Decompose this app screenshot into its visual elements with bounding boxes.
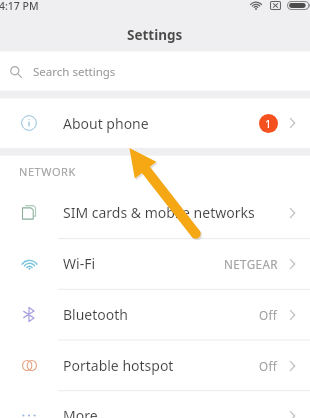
staticText: 1 bbox=[265, 116, 272, 131]
button[interactable]: More bbox=[0, 390, 310, 418]
button[interactable]: Wi-Fi bbox=[0, 238, 310, 289]
button[interactable]: Bluetooth bbox=[0, 289, 310, 340]
staticText: Settings bbox=[127, 26, 183, 44]
staticText: Off bbox=[259, 307, 278, 323]
other: Pointer bbox=[0, 0, 310, 418]
staticText: NETGEAR bbox=[224, 256, 278, 272]
button[interactable]: About phone bbox=[0, 98, 310, 148]
staticText: Portable hotspot bbox=[63, 356, 174, 375]
staticText: About phone bbox=[63, 114, 149, 133]
button[interactable]: SIM cards & mobile networks bbox=[0, 187, 310, 238]
staticText: Wi-Fi bbox=[63, 254, 96, 273]
staticText: More bbox=[63, 406, 98, 418]
staticText: NETWORK bbox=[19, 164, 76, 179]
staticText: Search settings bbox=[33, 64, 116, 80]
staticText: SIM cards & mobile networks bbox=[63, 203, 255, 222]
staticText: Off bbox=[259, 358, 278, 374]
staticText: 4:17 PM bbox=[0, 0, 39, 13]
button[interactable]: Portable hotspot bbox=[0, 340, 310, 391]
button[interactable]: Search settings bbox=[0, 52, 310, 91]
staticText: Bluetooth bbox=[63, 305, 128, 324]
